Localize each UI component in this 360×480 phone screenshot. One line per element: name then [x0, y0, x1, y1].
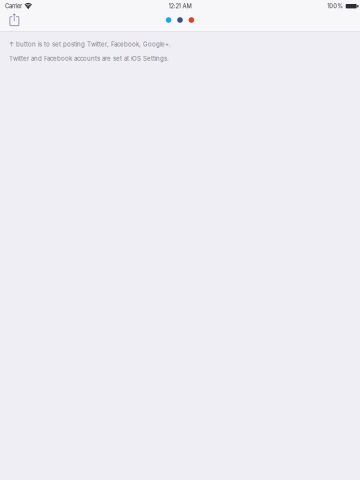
staticText: Twitter and Facebook accounts are set at… [9, 55, 169, 62]
button[interactable]: Facebook [177, 17, 183, 23]
staticText: Carrier [5, 3, 22, 10]
staticText: ↑ button is to set posting Twitter, Face… [9, 40, 171, 48]
staticText: 100% [327, 3, 343, 10]
button[interactable]: Twitter [166, 17, 171, 23]
button[interactable]: Share [5, 11, 23, 31]
staticText: 12:21 AM [168, 3, 191, 10]
button[interactable]: Google Plus [189, 17, 194, 23]
